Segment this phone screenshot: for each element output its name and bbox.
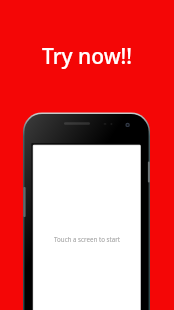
staticText: Touch a screen to start <box>0 235 174 243</box>
button[interactable]: Touch a screen to start <box>0 0 174 310</box>
staticText: Try now!! <box>0 42 174 71</box>
